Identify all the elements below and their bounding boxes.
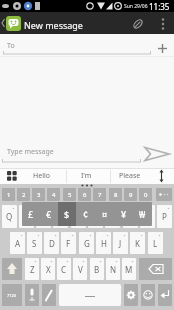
staticText: X	[46, 264, 51, 275]
button[interactable]: U	[105, 205, 120, 228]
button[interactable]: E	[36, 205, 51, 228]
button[interactable]: V	[73, 258, 87, 280]
button[interactable]: O	[140, 205, 155, 228]
staticText: 11:35	[149, 1, 170, 12]
staticText: 5	[68, 191, 72, 199]
button[interactable]: J	[113, 232, 128, 254]
button[interactable]: F	[61, 232, 76, 254]
button[interactable]: X	[41, 258, 55, 280]
staticText: K	[135, 238, 140, 249]
button[interactable]: I	[123, 205, 138, 228]
button[interactable]	[156, 169, 167, 183]
staticText: 6	[83, 191, 87, 199]
staticText: 3	[37, 191, 41, 199]
button[interactable]: Please	[114, 169, 146, 183]
button[interactable]	[139, 258, 172, 280]
button[interactable]: A	[10, 232, 25, 254]
button[interactable]: M	[122, 258, 136, 280]
button[interactable]	[144, 146, 171, 163]
staticText: £	[28, 208, 34, 220]
button[interactable]: 2	[17, 188, 30, 201]
staticText: To	[7, 41, 15, 51]
button[interactable]: Q	[2, 205, 17, 228]
button[interactable]: 7123	[2, 284, 22, 306]
button[interactable]: 9	[124, 188, 137, 201]
button[interactable]	[132, 18, 144, 30]
staticText: Z	[30, 264, 35, 275]
button[interactable]: ¥	[114, 202, 133, 226]
button[interactable]: B	[90, 258, 104, 280]
button[interactable]	[7, 171, 17, 181]
button[interactable]: 8	[109, 188, 122, 201]
staticText: I'm	[81, 171, 92, 181]
button[interactable]	[6, 16, 21, 31]
button[interactable]: K	[130, 232, 145, 254]
staticText: Please	[119, 171, 141, 181]
staticText: 1	[7, 191, 11, 199]
staticText: A	[15, 238, 21, 249]
button[interactable]: ¢	[76, 202, 95, 226]
button[interactable]: G	[79, 232, 94, 254]
button[interactable]: 1	[2, 188, 15, 201]
button[interactable]: W	[19, 205, 34, 228]
button[interactable]: S	[27, 232, 42, 254]
button[interactable]: 5	[63, 188, 76, 201]
button[interactable]: £	[22, 202, 40, 226]
button[interactable]: H	[96, 232, 111, 254]
button[interactable]: €	[40, 202, 58, 226]
button[interactable]: 3	[32, 188, 45, 201]
staticText: V	[78, 264, 83, 275]
staticText: F	[66, 238, 71, 249]
button[interactable]: C	[57, 258, 71, 280]
button[interactable]	[141, 284, 155, 306]
button[interactable]: Z	[25, 258, 39, 280]
button[interactable]: ₩	[133, 202, 152, 226]
button[interactable]	[158, 17, 168, 31]
button[interactable]: Y	[88, 205, 103, 228]
staticText: 9	[129, 191, 133, 199]
button[interactable]	[124, 284, 138, 306]
staticText: W	[23, 211, 31, 222]
button[interactable]: D	[44, 232, 59, 254]
button[interactable]	[25, 284, 39, 306]
staticText: Q	[6, 211, 13, 222]
button[interactable]	[42, 284, 56, 306]
button[interactable]: R	[53, 205, 68, 228]
button[interactable]	[0, 140, 142, 166]
button[interactable]: ¤	[95, 202, 114, 226]
staticText: O	[144, 211, 151, 222]
staticText: 2	[22, 191, 26, 199]
button[interactable]	[0, 34, 174, 56]
button[interactable]: I'm	[73, 169, 99, 183]
staticText: 7123	[7, 293, 17, 298]
button[interactable]: P	[157, 205, 172, 228]
button[interactable]: L	[148, 232, 163, 254]
button[interactable]	[59, 284, 121, 306]
button[interactable]	[158, 284, 172, 306]
button[interactable]: 6	[78, 188, 91, 201]
button[interactable]: 0	[139, 188, 152, 201]
button[interactable]: N	[106, 258, 120, 280]
button[interactable]	[2, 258, 22, 280]
button[interactable]: Hello	[27, 169, 56, 183]
staticText: Type message	[7, 147, 54, 157]
button[interactable]: $	[58, 202, 76, 226]
staticText: L	[153, 238, 158, 249]
staticText: ¥	[121, 208, 127, 220]
staticText: G	[84, 238, 90, 249]
button[interactable]: 7	[93, 188, 106, 201]
staticText: €	[46, 208, 52, 220]
staticText: ¤	[102, 208, 108, 220]
button[interactable]	[156, 188, 172, 201]
staticText: H	[101, 238, 107, 249]
button[interactable]: 4	[47, 188, 60, 201]
button[interactable]	[158, 44, 167, 53]
staticText: D	[49, 238, 55, 249]
button[interactable]: T	[71, 205, 86, 228]
